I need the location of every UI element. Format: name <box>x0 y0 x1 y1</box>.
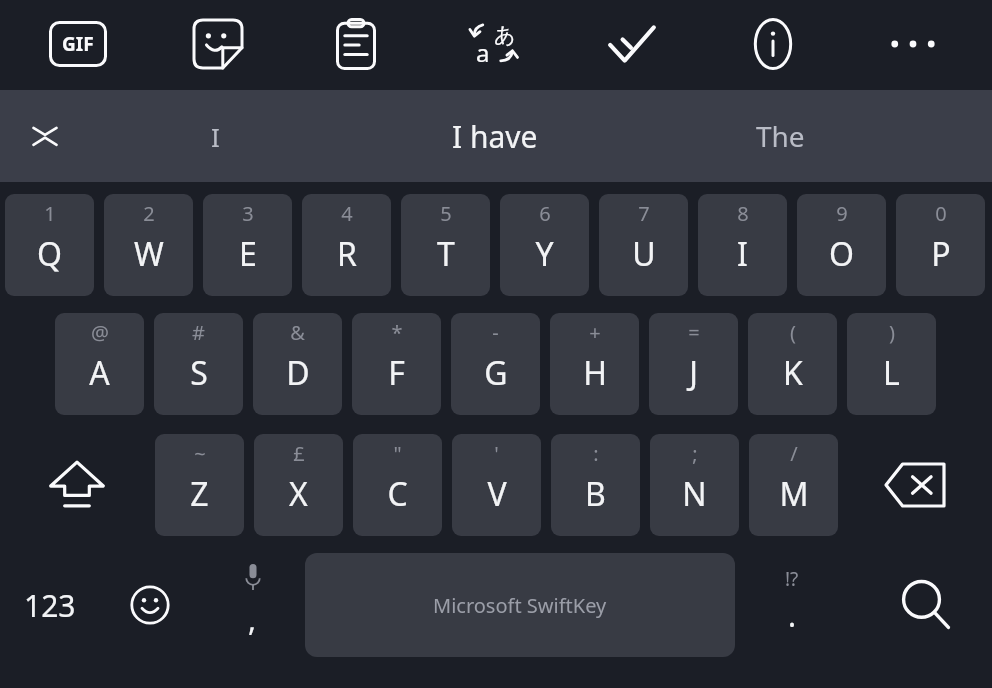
button[interactable]: Emoji <box>100 553 200 657</box>
button[interactable]: £ <box>254 434 343 536</box>
button[interactable]: Clipboard <box>316 0 396 88</box>
staticText: K <box>783 351 803 395</box>
button[interactable]: " <box>353 434 442 536</box>
staticText: 4 <box>341 200 353 227</box>
staticText: ; <box>692 440 698 467</box>
staticText: あ <box>494 22 516 48</box>
button[interactable]: Editor <box>593 0 673 88</box>
button[interactable]: ( <box>748 313 837 415</box>
button[interactable]: 3 <box>203 194 292 296</box>
button[interactable]: 6 <box>500 194 589 296</box>
staticText: # <box>192 319 205 346</box>
staticText: 2 <box>143 200 155 227</box>
staticText: = <box>688 319 700 346</box>
staticText: + <box>589 319 601 346</box>
staticText: G <box>484 351 508 395</box>
button[interactable]: 8 <box>698 194 787 296</box>
staticText: J <box>689 351 698 395</box>
staticText: I have <box>452 116 538 157</box>
staticText: S <box>190 351 208 395</box>
staticText: * <box>391 319 403 346</box>
staticText: ) <box>889 319 895 346</box>
staticText: M <box>779 472 809 516</box>
staticText: . <box>788 595 797 636</box>
staticText: U <box>632 232 656 276</box>
button[interactable]: I have <box>370 90 620 182</box>
staticText: F <box>388 351 405 395</box>
staticText: H <box>583 351 607 395</box>
staticText: Microsoft SwiftKey <box>433 592 607 619</box>
button[interactable]: ) <box>847 313 936 415</box>
button[interactable]: & <box>253 313 342 415</box>
staticText: " <box>393 440 402 467</box>
staticText: N <box>682 472 707 516</box>
button[interactable]: 5 <box>401 194 490 296</box>
staticText: Q <box>37 232 62 276</box>
staticText: ' <box>494 440 499 467</box>
staticText: Y <box>535 232 554 276</box>
staticText: T <box>437 232 455 276</box>
button[interactable]: Stickers <box>178 0 258 88</box>
staticText: 7 <box>638 200 650 227</box>
button[interactable]: - <box>451 313 540 415</box>
staticText: 0 <box>935 200 947 227</box>
button[interactable]: Collapse predictions <box>0 90 90 182</box>
button[interactable]: : <box>551 434 640 536</box>
staticText: C <box>387 472 408 516</box>
staticText: ( <box>790 319 796 346</box>
staticText: !? <box>785 566 799 592</box>
staticText: ~ <box>194 440 206 467</box>
button[interactable]: Shift <box>8 434 146 536</box>
staticText: X <box>289 472 308 516</box>
staticText: 6 <box>539 200 551 227</box>
button[interactable]: The <box>680 90 880 182</box>
staticText: D <box>286 351 310 395</box>
staticText: L <box>883 351 900 395</box>
button[interactable]: Microsoft SwiftKey <box>305 553 735 657</box>
staticText: 5 <box>440 200 452 227</box>
staticText: - <box>492 319 499 346</box>
staticText: V <box>487 472 507 516</box>
button[interactable]: + <box>550 313 639 415</box>
button[interactable]: Info <box>733 0 813 88</box>
button[interactable]: 123 <box>0 553 100 657</box>
staticText: 8 <box>737 200 749 227</box>
button[interactable]: / <box>749 434 838 536</box>
staticText: Z <box>190 472 209 516</box>
button[interactable]: 1 <box>5 194 94 296</box>
staticText: I <box>737 232 748 276</box>
button[interactable]: Search <box>860 553 992 657</box>
button[interactable]: GIF <box>38 0 118 88</box>
button[interactable]: = <box>649 313 738 415</box>
staticText: GIF <box>62 31 94 57</box>
button[interactable]: * <box>352 313 441 415</box>
button[interactable]: , <box>205 553 300 657</box>
staticText: E <box>239 232 257 276</box>
staticText: 9 <box>836 200 848 227</box>
staticText: 1 <box>44 200 56 227</box>
button[interactable]: !? <box>742 553 842 657</box>
button[interactable]: @ <box>55 313 144 415</box>
button[interactable]: ~ <box>155 434 244 536</box>
button[interactable]: ; <box>650 434 739 536</box>
button[interactable]: ' <box>452 434 541 536</box>
button[interactable]: 7 <box>599 194 688 296</box>
button[interactable]: More options <box>873 0 953 88</box>
staticText: 123 <box>24 585 76 626</box>
button[interactable]: I <box>120 90 310 182</box>
staticText: I <box>211 119 220 154</box>
staticText: £ <box>293 440 305 467</box>
button[interactable]: Backspace <box>846 434 984 536</box>
staticText: O <box>829 232 854 276</box>
button[interactable]: 0 <box>896 194 985 296</box>
staticText: W <box>134 232 164 276</box>
staticText: & <box>290 319 305 346</box>
staticText: R <box>337 232 357 276</box>
staticText: B <box>585 472 606 516</box>
button[interactable]: Translate <box>454 0 534 88</box>
button[interactable]: 2 <box>104 194 193 296</box>
button[interactable]: # <box>154 313 243 415</box>
button[interactable]: 9 <box>797 194 886 296</box>
button[interactable]: 4 <box>302 194 391 296</box>
staticText: a <box>476 36 490 69</box>
